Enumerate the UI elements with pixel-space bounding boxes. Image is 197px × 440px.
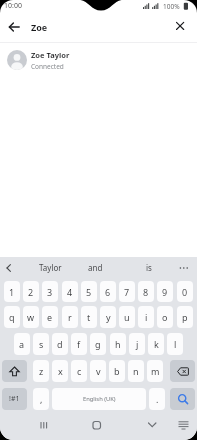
staticText: v xyxy=(96,365,101,377)
staticText: !#1 xyxy=(9,394,20,404)
button[interactable]: 0 xyxy=(177,281,193,302)
button[interactable]: x xyxy=(52,360,68,382)
button[interactable]: . xyxy=(149,388,165,410)
staticText: a xyxy=(19,338,25,350)
button[interactable]: v xyxy=(90,360,106,382)
button[interactable] xyxy=(170,388,195,410)
button[interactable] xyxy=(172,18,188,34)
staticText: t xyxy=(87,311,91,323)
button[interactable]: 8 xyxy=(138,281,154,302)
staticText: z xyxy=(39,365,44,377)
staticText: 2 xyxy=(28,286,34,298)
button[interactable]: l xyxy=(167,333,183,355)
button[interactable]: 3 xyxy=(42,281,58,302)
staticText: 10:00 xyxy=(4,1,22,11)
button[interactable]: Taylor xyxy=(24,257,76,278)
staticText: i xyxy=(145,311,148,323)
staticText: s xyxy=(39,338,44,350)
staticText: Taylor xyxy=(39,262,62,273)
button[interactable]: z xyxy=(33,360,49,382)
button[interactable]: y xyxy=(100,306,116,328)
button[interactable]: d xyxy=(52,333,68,355)
staticText: h xyxy=(115,338,121,350)
button[interactable] xyxy=(170,360,195,382)
staticText: 9 xyxy=(162,286,168,298)
button[interactable]: k xyxy=(148,333,164,355)
button[interactable]: h xyxy=(110,333,126,355)
staticText: 3 xyxy=(47,286,53,298)
button[interactable]: English (UK) xyxy=(52,388,146,410)
button[interactable]: j xyxy=(129,333,145,355)
button[interactable]: w xyxy=(23,306,39,328)
staticText: f xyxy=(77,338,81,350)
staticText: g xyxy=(95,338,101,350)
staticText: 0 xyxy=(182,286,188,298)
staticText: y xyxy=(106,311,111,323)
staticText: x xyxy=(58,365,63,377)
staticText: 5 xyxy=(86,286,92,298)
button[interactable]: b xyxy=(109,360,125,382)
button[interactable]: 5 xyxy=(81,281,97,302)
button[interactable]: a xyxy=(14,333,30,355)
staticText: , xyxy=(40,393,43,405)
staticText: c xyxy=(77,365,82,377)
button[interactable] xyxy=(4,19,20,35)
staticText: p xyxy=(182,311,188,323)
button[interactable]: i xyxy=(138,306,154,328)
button[interactable]: t xyxy=(81,306,97,328)
staticText: d xyxy=(57,338,63,350)
staticText: n xyxy=(133,365,139,377)
button[interactable]: 9 xyxy=(157,281,173,302)
button[interactable]: Zoe Taylor xyxy=(0,46,197,74)
staticText: q xyxy=(9,311,15,323)
staticText: and xyxy=(88,262,103,273)
button[interactable] xyxy=(174,257,194,278)
button[interactable]: 6 xyxy=(100,281,116,302)
staticText: English (UK) xyxy=(83,395,116,403)
staticText: . xyxy=(156,393,159,405)
staticText: is xyxy=(146,262,152,273)
button[interactable]: g xyxy=(90,333,106,355)
button[interactable]: and xyxy=(78,257,112,278)
button[interactable]: m xyxy=(147,360,163,382)
staticText: Zoe Taylor xyxy=(31,50,70,60)
staticText: m xyxy=(151,365,160,377)
button[interactable]: s xyxy=(33,333,49,355)
button[interactable]: 2 xyxy=(23,281,39,302)
staticText: 100% xyxy=(163,2,180,11)
button[interactable]: e xyxy=(42,306,58,328)
button[interactable]: c xyxy=(71,360,87,382)
staticText: 8 xyxy=(143,286,149,298)
button[interactable]: !#1 xyxy=(2,388,27,410)
button[interactable]: q xyxy=(4,306,20,328)
staticText: o xyxy=(162,311,168,323)
button[interactable]: 4 xyxy=(62,281,78,302)
staticText: 1 xyxy=(9,286,15,298)
staticText: 7 xyxy=(124,286,130,298)
button[interactable]: 7 xyxy=(119,281,135,302)
staticText: Connected xyxy=(31,62,64,71)
staticText: e xyxy=(47,311,53,323)
staticText: r xyxy=(68,311,72,323)
button[interactable]: r xyxy=(62,306,78,328)
staticText: 4 xyxy=(67,286,73,298)
staticText: l xyxy=(174,338,177,350)
button[interactable]: u xyxy=(119,306,135,328)
button[interactable]: is xyxy=(134,257,164,278)
staticText: 6 xyxy=(105,286,111,298)
button[interactable] xyxy=(2,360,27,382)
staticText: Zoe xyxy=(31,21,48,33)
staticText: u xyxy=(124,311,130,323)
button[interactable]: o xyxy=(157,306,173,328)
button[interactable]: p xyxy=(177,306,193,328)
staticText: w xyxy=(27,311,35,323)
staticText: b xyxy=(114,365,120,377)
button[interactable]: n xyxy=(128,360,144,382)
button[interactable]: 1 xyxy=(4,281,20,302)
staticText: k xyxy=(154,338,159,350)
staticText: j xyxy=(136,338,139,350)
button[interactable]: f xyxy=(71,333,87,355)
button[interactable] xyxy=(0,257,18,278)
button[interactable]: , xyxy=(33,388,49,410)
